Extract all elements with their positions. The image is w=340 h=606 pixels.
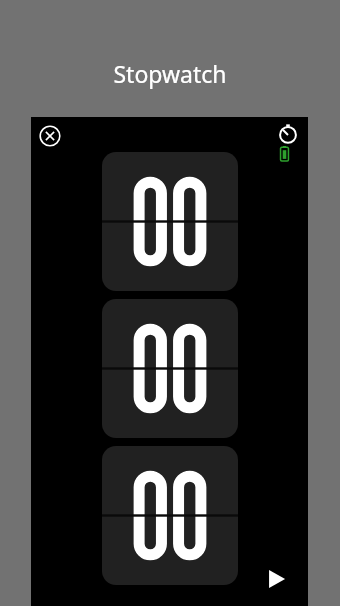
button[interactable] <box>102 299 238 438</box>
staticText: Stopwatch <box>0 58 340 89</box>
button[interactable]: Stopwatch <box>276 121 300 145</box>
button[interactable] <box>102 152 238 291</box>
button[interactable]: Close <box>39 125 61 147</box>
button[interactable]: Start <box>262 564 292 594</box>
button[interactable] <box>102 446 238 585</box>
